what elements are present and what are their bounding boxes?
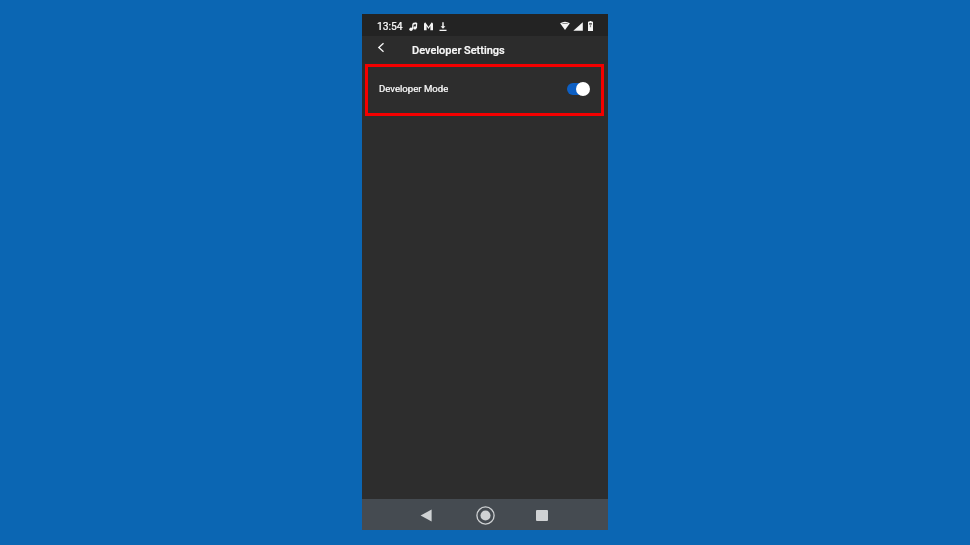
button[interactable]: Recents [531, 504, 553, 526]
staticText: 13:54 [377, 20, 403, 32]
button[interactable]: Home [474, 504, 496, 526]
button[interactable]: Developer Mode [362, 63, 608, 116]
button[interactable]: Back [415, 504, 437, 526]
staticText: Developer Mode [379, 83, 449, 94]
staticText: Developer Settings [412, 44, 505, 57]
button[interactable]: Developer Mode toggle [567, 81, 590, 96]
button[interactable]: Back [374, 40, 388, 54]
